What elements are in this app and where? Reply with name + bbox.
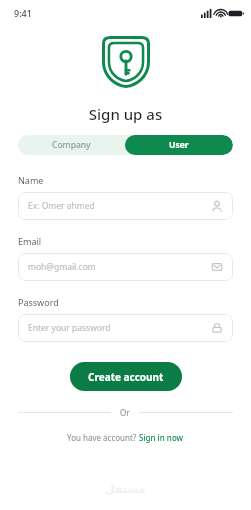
staticText: moh@gmail.com (28, 261, 211, 273)
staticText: 9:41 (14, 7, 32, 19)
staticText: Ex: Omer ahmed (28, 200, 211, 212)
staticText: Email (18, 235, 233, 247)
button[interactable]: User (125, 135, 233, 155)
staticText: Sign up as (0, 104, 251, 124)
staticText: مستقل (105, 483, 146, 496)
staticText: Sign in now (139, 432, 184, 443)
staticText: Create account (88, 370, 164, 384)
staticText: Company (52, 139, 91, 151)
button[interactable]: Company (18, 135, 125, 155)
button[interactable]: Ex: Omer ahmed (18, 192, 233, 220)
button[interactable]: Create account (70, 362, 182, 391)
button[interactable]: moh@gmail.com (18, 253, 233, 281)
staticText: Name (18, 174, 233, 186)
staticText: User (169, 139, 189, 151)
staticText: Or (120, 407, 130, 418)
button[interactable]: Enter your password (18, 314, 233, 342)
staticText: Enter your password (28, 322, 211, 334)
button[interactable]: Sign in now (139, 432, 184, 443)
staticText: Password (18, 296, 233, 308)
staticText: You have account? (67, 432, 139, 443)
